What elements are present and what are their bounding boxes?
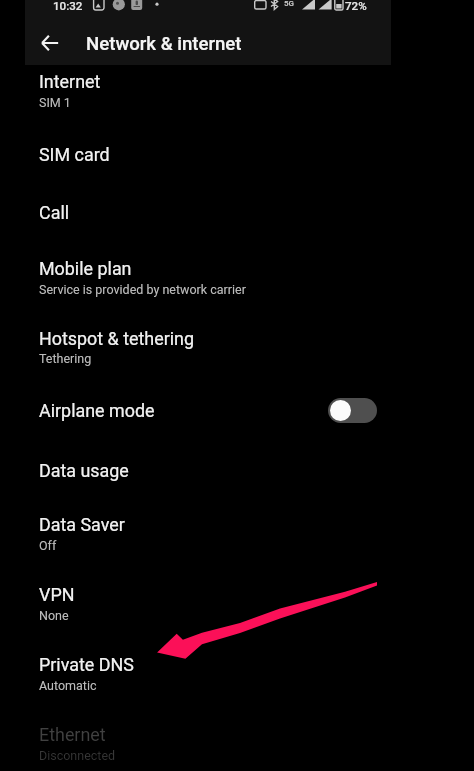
button[interactable]: Data Saver <box>0 498 474 568</box>
staticText: Call <box>39 202 70 223</box>
button[interactable]: SIM card <box>0 127 474 185</box>
staticText: Data Saver <box>39 514 125 535</box>
button[interactable]: Hotspot & tethering <box>0 312 474 383</box>
staticText: SIM 1 <box>39 95 71 110</box>
staticText: Hotspot & tethering <box>39 328 195 349</box>
staticText: Automatic <box>39 678 97 693</box>
staticText: Data usage <box>39 460 129 481</box>
button[interactable]: Mobile plan <box>0 242 474 312</box>
staticText: 72% <box>345 0 367 13</box>
staticText: Internet <box>39 71 101 92</box>
button[interactable]: VPN <box>0 568 474 638</box>
staticText: Tethering <box>39 351 92 366</box>
button[interactable]: Private DNS <box>0 638 474 708</box>
button[interactable]: Airplane mode <box>0 383 474 442</box>
staticText: Disconnected <box>39 748 116 763</box>
button[interactable]: Airplane mode toggle <box>328 398 377 423</box>
button[interactable]: Call <box>0 185 474 242</box>
button[interactable]: Ethernet <box>0 708 474 771</box>
staticText: Private DNS <box>39 654 134 675</box>
staticText: None <box>39 608 69 623</box>
button[interactable]: Internet <box>0 68 474 127</box>
staticText: Service is provided by network carrier <box>39 282 246 297</box>
staticText: Network & internet <box>86 33 242 55</box>
staticText: Ethernet <box>39 724 106 745</box>
staticText: 5G <box>284 0 294 8</box>
staticText: Off <box>39 538 57 553</box>
staticText: SIM card <box>39 144 110 165</box>
staticText: Mobile plan <box>39 258 132 279</box>
staticText: VPN <box>39 584 75 605</box>
staticText: 10:32 <box>53 0 83 13</box>
staticText: Airplane mode <box>39 400 155 421</box>
button[interactable]: Data usage <box>0 442 474 498</box>
button[interactable]: Back <box>31 24 69 62</box>
